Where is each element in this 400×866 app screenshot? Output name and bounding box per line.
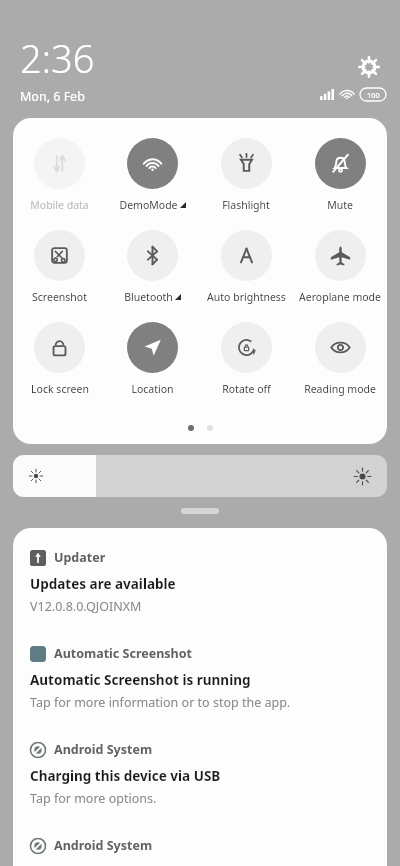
button[interactable]: Automatic Screenshot (30, 645, 370, 711)
staticText: Mute (327, 198, 353, 212)
staticText: Tap for more options. (30, 790, 157, 807)
staticText: Bluetooth (124, 290, 173, 304)
button[interactable]: Location (106, 320, 199, 398)
button[interactable]: DemoMode (106, 136, 199, 214)
button[interactable]: Reading mode (293, 320, 387, 398)
staticText: Flashlight (222, 198, 270, 212)
button[interactable]: Updater (30, 549, 370, 615)
staticText: DemoMode (119, 198, 178, 212)
staticText: Automatic Screenshot is running (30, 671, 251, 689)
staticText: Charging this device via USB (30, 767, 221, 785)
button[interactable]: Brightness (13, 455, 387, 497)
staticText: Reading mode (304, 382, 376, 396)
staticText: Rotate off (222, 382, 271, 396)
staticText: 100 (367, 90, 380, 100)
staticText: Auto brightness (207, 290, 286, 304)
staticText: Location (131, 382, 174, 396)
staticText: Aeroplane mode (299, 290, 381, 304)
button[interactable]: Lock screen (13, 320, 106, 398)
button[interactable]: Flashlight (199, 136, 293, 214)
button[interactable]: Settings (352, 50, 386, 84)
button[interactable]: Android System (30, 837, 370, 854)
staticText: Updates are available (30, 575, 176, 593)
button[interactable]: Expand (181, 508, 219, 514)
staticText: Android System (54, 837, 153, 854)
button[interactable]: Mobile data (13, 136, 106, 214)
staticText: Screenshot (32, 290, 87, 304)
button[interactable]: Rotate off (199, 320, 293, 398)
staticText: V12.0.8.0.QJOINXM (30, 598, 142, 615)
staticText: Tap for more information or to stop the … (30, 694, 291, 711)
staticText: Updater (54, 549, 106, 566)
staticText: 2:36 (20, 32, 95, 84)
button[interactable]: Mute (293, 136, 387, 214)
staticText: Automatic Screenshot (54, 645, 192, 662)
button[interactable]: Aeroplane mode (293, 228, 387, 306)
staticText: Android System (54, 741, 153, 758)
staticText: Lock screen (31, 382, 89, 396)
button[interactable]: Android System (30, 741, 370, 807)
staticText: Mon, 6 Feb (20, 88, 85, 105)
button[interactable]: Bluetooth (106, 228, 199, 306)
button[interactable]: Auto brightness (199, 228, 293, 306)
button[interactable]: Screenshot (13, 228, 106, 306)
staticText: Mobile data (30, 198, 89, 212)
